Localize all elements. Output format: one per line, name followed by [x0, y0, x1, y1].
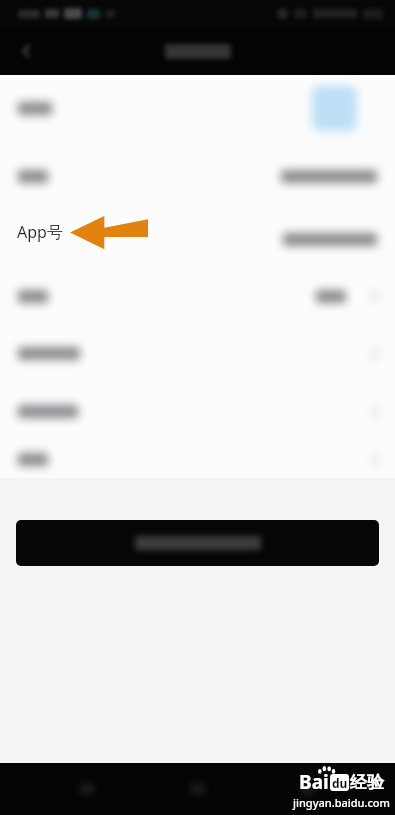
button[interactable] — [16, 520, 379, 566]
button[interactable]: Back — [64, 772, 110, 806]
staticText: App号 — [17, 221, 63, 243]
button[interactable] — [0, 75, 395, 142]
button[interactable] — [0, 383, 395, 440]
button[interactable]: Home — [175, 772, 221, 806]
button[interactable] — [0, 325, 395, 382]
button[interactable] — [0, 143, 395, 210]
staticText: 经验 — [350, 772, 384, 793]
button[interactable]: Back — [12, 36, 42, 66]
staticText: Bai — [299, 769, 329, 795]
button[interactable]: Recents — [285, 772, 331, 806]
staticText: jingyan.baidu.com — [293, 795, 390, 810]
button[interactable] — [0, 211, 395, 267]
button[interactable] — [0, 268, 395, 324]
staticText: du — [332, 775, 348, 791]
button[interactable] — [0, 441, 395, 478]
